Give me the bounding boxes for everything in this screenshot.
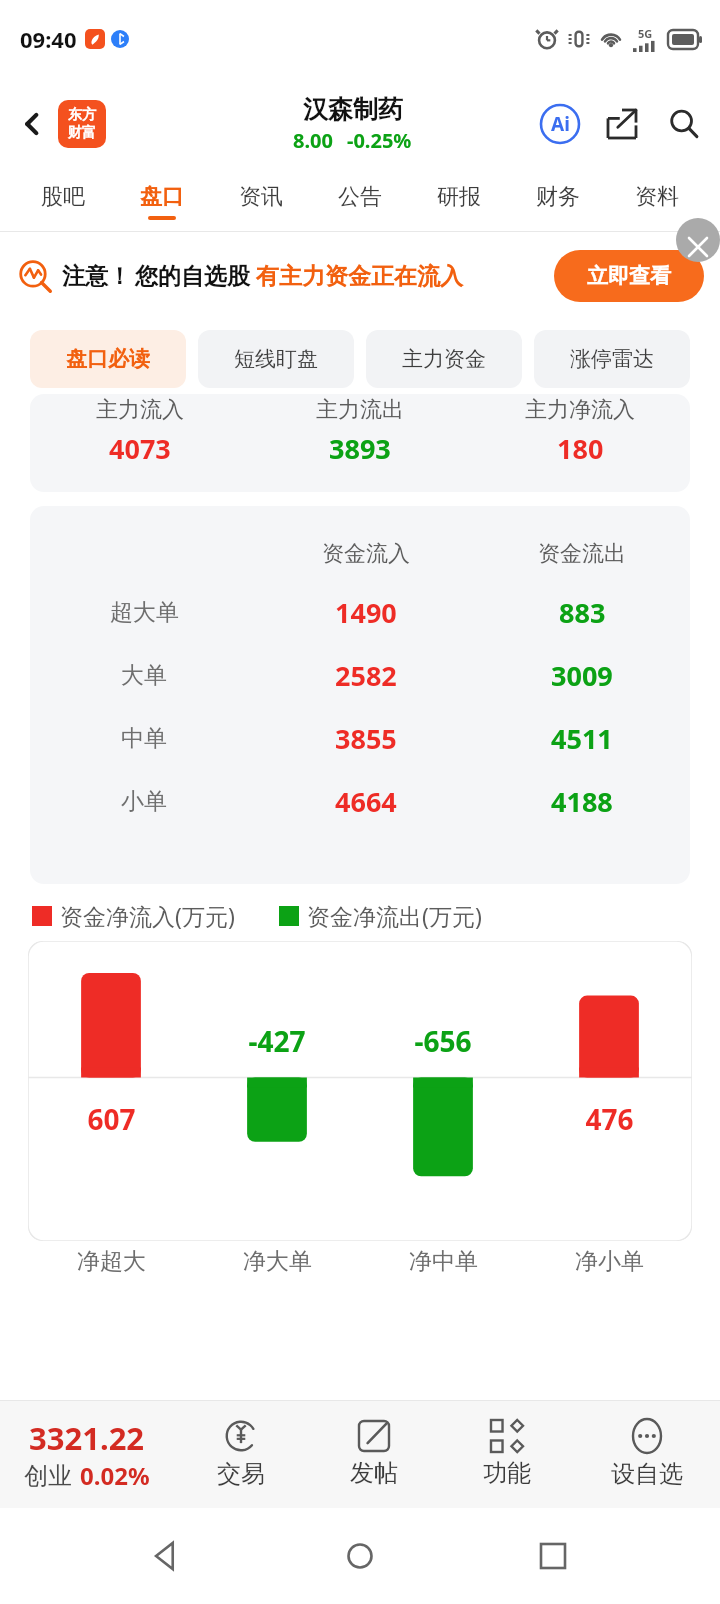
staticText: 小单 bbox=[121, 787, 167, 816]
button[interactable]: 财务 bbox=[508, 170, 607, 232]
button[interactable]: 涨停雷达 bbox=[534, 330, 690, 388]
staticText: 5G bbox=[638, 26, 653, 41]
staticText: 资金流出 bbox=[538, 540, 626, 568]
button[interactable]: Recent apps bbox=[526, 1529, 580, 1583]
staticText: 立即查看 bbox=[587, 263, 671, 289]
staticText: 短线盯盘 bbox=[234, 346, 318, 372]
staticText: 公告 bbox=[338, 183, 382, 211]
staticText: 资料 bbox=[635, 183, 679, 211]
staticText: 净小单 bbox=[575, 1247, 644, 1276]
button[interactable]: 立即查看 bbox=[554, 250, 704, 302]
button[interactable]: 盘口必读 bbox=[30, 330, 186, 388]
staticText: -0.25% bbox=[347, 127, 412, 154]
staticText: 资讯 bbox=[239, 183, 283, 211]
staticText: 4188 bbox=[551, 783, 613, 820]
staticText: 您的自选股 bbox=[135, 262, 250, 291]
staticText: 2582 bbox=[335, 657, 397, 694]
staticText: Ai bbox=[551, 111, 570, 137]
staticText: 资金流入 bbox=[322, 540, 410, 568]
button[interactable]: 3321.22 bbox=[0, 1400, 174, 1508]
button[interactable]: 短线盯盘 bbox=[198, 330, 354, 388]
staticText: 主力流出 bbox=[316, 396, 404, 424]
button[interactable]: 公告 bbox=[310, 170, 409, 232]
staticText: 研报 bbox=[437, 183, 481, 211]
staticText: 发帖 bbox=[350, 1458, 398, 1488]
staticText: 净大单 bbox=[243, 1247, 312, 1276]
staticText: 1490 bbox=[335, 594, 397, 631]
button[interactable]: Back bbox=[8, 100, 56, 148]
staticText: 883 bbox=[559, 594, 606, 631]
staticText: 设自选 bbox=[611, 1459, 683, 1489]
staticText: -656 bbox=[414, 1022, 472, 1060]
staticText: 3893 bbox=[329, 430, 391, 467]
button[interactable]: 资讯 bbox=[211, 170, 310, 232]
button[interactable]: 主力资金 bbox=[366, 330, 522, 388]
staticText: 有主力资金正在流入 bbox=[256, 262, 463, 291]
staticText: 交易 bbox=[217, 1459, 265, 1489]
staticText: 东方 bbox=[68, 106, 96, 124]
staticText: 盘口必读 bbox=[66, 346, 150, 372]
staticText: 财务 bbox=[536, 183, 580, 211]
staticText: 盘口 bbox=[140, 183, 184, 211]
staticText: -427 bbox=[248, 1022, 306, 1060]
button[interactable]: 设自选 bbox=[573, 1400, 720, 1508]
staticText: 汉森制药 bbox=[303, 94, 403, 125]
button[interactable]: AI assistant bbox=[538, 102, 582, 146]
staticText: 净超大 bbox=[77, 1247, 146, 1276]
staticText: 创业 bbox=[24, 1461, 72, 1491]
staticText: 4664 bbox=[335, 783, 397, 820]
staticText: 超大单 bbox=[110, 598, 179, 627]
staticText: 4073 bbox=[109, 430, 171, 467]
staticText: 3009 bbox=[551, 657, 613, 694]
staticText: 09:40 bbox=[20, 24, 77, 54]
button[interactable]: Close banner bbox=[676, 218, 720, 262]
staticText: 4511 bbox=[551, 720, 613, 757]
button[interactable]: 股吧 bbox=[14, 170, 112, 232]
button[interactable]: 研报 bbox=[409, 170, 508, 232]
button[interactable]: 注意！ bbox=[18, 232, 704, 320]
button[interactable]: 发帖 bbox=[307, 1400, 440, 1508]
staticText: 净中单 bbox=[409, 1247, 478, 1276]
staticText: 注意！ bbox=[62, 262, 131, 291]
staticText: 大单 bbox=[121, 661, 167, 690]
staticText: 3321.22 bbox=[29, 1417, 145, 1459]
button[interactable]: Back bbox=[140, 1529, 194, 1583]
staticText: 0.02% bbox=[80, 1459, 150, 1492]
staticText: 607 bbox=[87, 1100, 136, 1138]
staticText: 主力资金 bbox=[402, 346, 486, 372]
staticText: 主力流入 bbox=[96, 396, 184, 424]
staticText: 涨停雷达 bbox=[570, 346, 654, 372]
staticText: 资金净流入(万元) bbox=[60, 900, 235, 931]
staticText: 180 bbox=[557, 430, 604, 467]
button[interactable]: 盘口 bbox=[112, 170, 211, 232]
staticText: 476 bbox=[585, 1100, 634, 1138]
staticText: 主力净流入 bbox=[525, 396, 635, 424]
staticText: 股吧 bbox=[41, 183, 85, 211]
button[interactable]: Home bbox=[333, 1529, 387, 1583]
button[interactable]: 功能 bbox=[440, 1400, 573, 1508]
button[interactable]: East Money logo bbox=[58, 100, 106, 148]
button[interactable]: Search bbox=[662, 102, 706, 146]
staticText: 3855 bbox=[335, 720, 397, 757]
staticText: 财富 bbox=[68, 124, 96, 142]
staticText: 资金净流出(万元) bbox=[307, 900, 482, 931]
staticText: 功能 bbox=[483, 1458, 531, 1488]
button[interactable]: 交易 bbox=[174, 1400, 307, 1508]
button[interactable]: 资料 bbox=[607, 170, 706, 232]
button[interactable]: Share bbox=[600, 102, 644, 146]
staticText: 中单 bbox=[121, 724, 167, 753]
staticText: 8.00 bbox=[293, 127, 333, 154]
